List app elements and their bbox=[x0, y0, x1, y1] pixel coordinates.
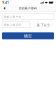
button[interactable]: Back bbox=[1, 5, 8, 11]
staticText: 请输入验证码 bbox=[3, 23, 21, 26]
staticText: 9 bbox=[47, 22, 49, 27]
staticText: k bbox=[44, 22, 46, 27]
staticText: 找回账户密码 bbox=[19, 7, 37, 10]
button[interactable]: Refresh captcha bbox=[32, 22, 54, 28]
staticText: 确定 bbox=[24, 33, 32, 38]
staticText: 9:41 bbox=[2, 1, 9, 4]
staticText: 请输入用户名 bbox=[3, 15, 21, 18]
button[interactable]: 确定 bbox=[2, 32, 54, 39]
staticText: 7 bbox=[41, 22, 43, 27]
staticText: A bbox=[37, 22, 40, 27]
